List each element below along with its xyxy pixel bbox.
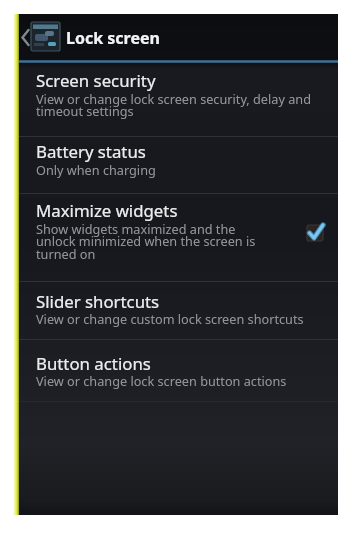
staticText: Only when charging: [36, 161, 156, 178]
staticText: Battery status: [36, 140, 146, 163]
staticText: View or change lock screen button action…: [36, 372, 287, 389]
button[interactable]: Battery status: [19, 137, 338, 193]
staticText: View or change lock screen security, del…: [36, 90, 311, 120]
staticText: Slider shortcuts: [36, 290, 160, 313]
button[interactable]: Screen security: [19, 63, 338, 136]
staticText: Lock screen: [66, 27, 160, 49]
staticText: Show widgets maximized and the unlock mi…: [36, 220, 256, 263]
staticText: Maximize widgets: [36, 199, 178, 222]
button[interactable]: Slider shortcuts: [19, 282, 338, 339]
button[interactable]: Button actions: [19, 340, 338, 401]
button[interactable]: Lock screen: [19, 14, 338, 60]
staticText: Button actions: [36, 352, 151, 375]
button[interactable]: Maximize widgets: [19, 194, 338, 281]
staticText: Screen security: [36, 69, 156, 92]
staticText: View or change custom lock screen shortc…: [36, 310, 304, 327]
